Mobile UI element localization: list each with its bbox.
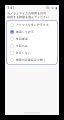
staticText: 毎回確認 [16, 37, 28, 40]
staticText: 9:41 [8, 6, 15, 10]
staticText: 許可しない [16, 51, 31, 54]
button[interactable]: 許可しない [6, 49, 58, 56]
staticText: 確認して許可 [16, 30, 34, 33]
button[interactable]: 確認して許可 [6, 28, 58, 35]
staticText: 権限の詳細設定を開く [16, 58, 46, 61]
staticText: カメラとマイクの利用を許可 [7, 12, 46, 15]
button[interactable]: アクセスを常に許可する [6, 21, 58, 28]
staticText: アクセスを常に許可する [16, 23, 49, 26]
staticText: 利用する権限を選んでください [7, 15, 49, 19]
button[interactable]: 毎回確認 [6, 35, 58, 42]
staticText: 今回のみ [16, 44, 28, 47]
staticText: llı ᯤ ▮ [46, 6, 56, 10]
button[interactable]: 今回のみ [6, 42, 58, 49]
button[interactable]: 権限の詳細設定を開く [6, 56, 58, 63]
